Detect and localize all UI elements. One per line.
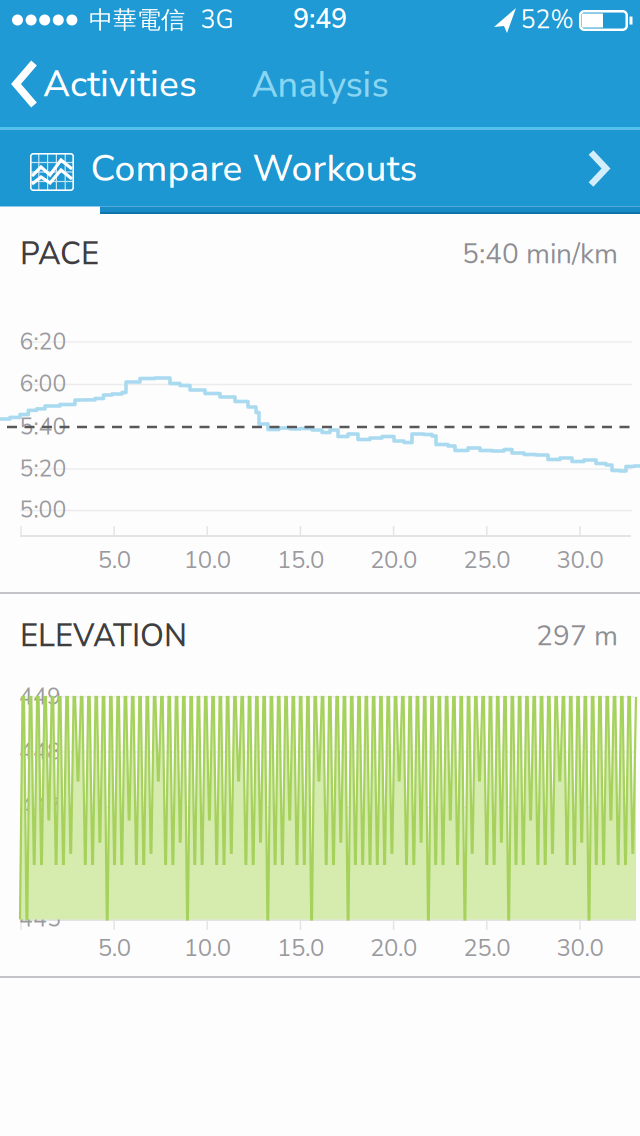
staticText: 5.0 [98,932,131,964]
staticText: 449 [19,681,61,713]
staticText: 447 [19,791,61,823]
staticText: 448 [19,736,61,768]
button[interactable]: Compare Workouts [0,129,640,206]
staticText: 9:49 [293,1,347,37]
staticText: Analysis [251,60,388,109]
button[interactable]: Activities [0,40,230,127]
staticText: 6:20 [19,326,66,358]
staticText: 6:00 [19,368,66,400]
staticText: 20.0 [370,932,417,964]
staticText: 30.0 [556,544,603,576]
staticText: PACE [20,233,99,275]
staticText: Activities [43,59,197,109]
staticText: 5:40 [19,411,66,443]
staticText: 25.0 [463,544,510,576]
staticText: 5:20 [19,453,66,485]
staticText: 20.0 [370,544,417,576]
staticText: 446 [19,847,61,879]
staticText: 15.0 [277,932,324,964]
staticText: 52% [520,3,573,37]
staticText: 5.0 [98,544,131,576]
staticText: 30.0 [556,932,603,964]
staticText: 3G [200,3,233,37]
staticText: 5:00 [19,494,66,526]
staticText: 15.0 [277,544,324,576]
staticText: 5:40 min/km [462,235,618,273]
staticText: ELEVATION [20,615,187,657]
staticText: 10.0 [184,544,231,576]
staticText: 10.0 [184,932,231,964]
staticText: 中華電信 [89,5,185,35]
staticText: 445 [19,903,61,935]
staticText: Compare Workouts [90,143,417,194]
staticText: 25.0 [463,932,510,964]
staticText: 297 m [536,617,618,655]
